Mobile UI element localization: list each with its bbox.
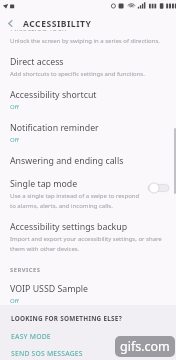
staticText: SEND SOS MESSAGES xyxy=(11,349,83,358)
staticText: EASY MODE xyxy=(11,332,51,341)
staticText: Notification reminder xyxy=(10,122,99,134)
staticText: VOIP USSD Sample xyxy=(10,283,89,295)
staticText: Import and export your accessibility set… xyxy=(10,235,162,243)
button[interactable]: VOIP USSD Sample xyxy=(0,274,176,305)
button[interactable]: Single tap mode xyxy=(0,167,176,210)
button[interactable]: Accessibility shortcut xyxy=(0,78,176,111)
staticText: SERVICES xyxy=(10,266,41,274)
staticText: LOOKING FOR SOMETHING ELSE? xyxy=(11,314,122,323)
button[interactable]: Direction lock xyxy=(0,30,176,45)
button[interactable]: EASY MODE xyxy=(11,332,51,341)
staticText: Off xyxy=(10,136,19,144)
button[interactable]: Accessibility settings backup xyxy=(0,210,176,253)
button[interactable]: Single tap mode toggle, off xyxy=(148,182,169,194)
button[interactable]: SEND SOS MESSAGES xyxy=(11,349,83,358)
staticText: Add shortcuts to specific settings and f… xyxy=(10,70,145,78)
staticText: to alarms, alerts, and incoming calls. xyxy=(10,202,113,210)
staticText: Answering and ending calls xyxy=(10,155,124,167)
button[interactable]: Direct access xyxy=(0,45,176,78)
button[interactable]: Notification reminder xyxy=(0,111,176,144)
staticText: Off xyxy=(10,297,19,305)
staticText: Unlock the screen by swiping in a series… xyxy=(10,37,160,45)
staticText: Direct access xyxy=(10,56,64,68)
staticText: Accessibility settings backup xyxy=(10,221,128,233)
button[interactable]: Back xyxy=(3,16,18,31)
button[interactable]: Answering and ending calls xyxy=(0,144,176,167)
staticText: them with other devices. xyxy=(10,245,80,253)
staticText: Use a single tap instead of a swipe to r… xyxy=(10,192,140,200)
staticText: ACCESSIBILITY xyxy=(23,18,92,30)
staticText: Single tap mode xyxy=(10,178,78,190)
staticText: Direction lock xyxy=(10,30,67,31)
staticText: gifs.com xyxy=(120,338,170,355)
staticText: Off xyxy=(10,103,19,111)
staticText: Accessibility shortcut xyxy=(10,89,97,101)
